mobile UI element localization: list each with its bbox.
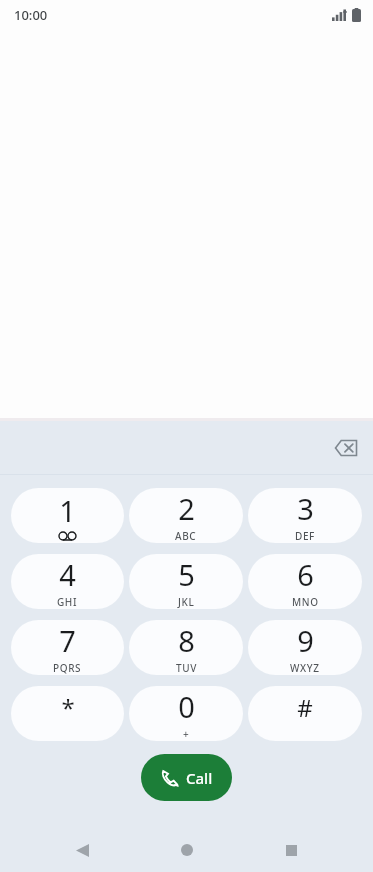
staticText: 4 xyxy=(59,555,76,594)
staticText: 3 xyxy=(297,489,314,528)
staticText: 5 xyxy=(178,555,195,594)
staticText: ABC xyxy=(175,529,197,543)
button[interactable]: 1 xyxy=(11,488,124,543)
staticText: 2 xyxy=(178,489,195,528)
staticText: 10:00 xyxy=(14,6,48,24)
staticText: MNO xyxy=(292,595,319,609)
staticText: GHI xyxy=(57,595,78,609)
button[interactable]: Call xyxy=(141,754,232,801)
button[interactable]: # xyxy=(248,686,362,741)
button[interactable]: Recent apps xyxy=(269,828,313,872)
staticText: TUV xyxy=(176,661,197,675)
button[interactable]: Home xyxy=(165,828,209,872)
button[interactable]: 2 xyxy=(129,488,243,543)
staticText: + xyxy=(183,727,190,741)
button[interactable]: 8 xyxy=(129,620,243,675)
button[interactable]: 5 xyxy=(129,554,243,609)
button[interactable]: 6 xyxy=(248,554,362,609)
staticText: 6 xyxy=(297,555,314,594)
staticText: JKL xyxy=(178,595,195,609)
button[interactable]: Back xyxy=(60,828,104,872)
staticText: 7 xyxy=(59,621,76,660)
staticText: 1 xyxy=(59,491,76,530)
staticText: 9 xyxy=(297,621,314,660)
staticText: WXYZ xyxy=(290,661,320,675)
button[interactable]: * xyxy=(11,686,124,741)
button[interactable]: 7 xyxy=(11,620,124,675)
staticText: 0 xyxy=(178,687,195,726)
staticText: # xyxy=(297,691,313,724)
button[interactable]: 4 xyxy=(11,554,124,609)
staticText: PQRS xyxy=(53,661,82,675)
staticText: Call xyxy=(186,768,213,788)
staticText: DEF xyxy=(295,529,315,543)
staticText: * xyxy=(61,691,75,724)
button[interactable]: 9 xyxy=(248,620,362,675)
button[interactable]: 3 xyxy=(248,488,362,543)
button[interactable]: 0 xyxy=(129,686,243,741)
button[interactable]: Backspace xyxy=(326,428,366,468)
staticText: 8 xyxy=(178,621,195,660)
